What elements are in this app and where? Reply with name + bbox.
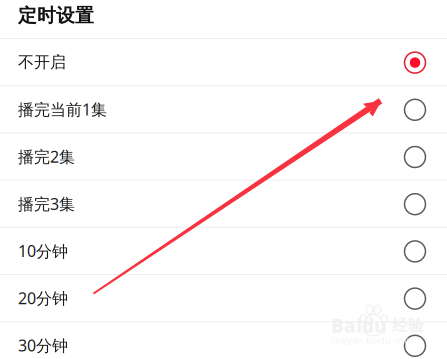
staticText: 播完2集 <box>18 146 75 167</box>
staticText: 不开启 <box>18 52 66 72</box>
button[interactable]: 播完2集 <box>0 133 447 181</box>
button[interactable]: 播完3集 <box>0 181 447 228</box>
staticText: 30分钟 <box>18 335 68 356</box>
staticText: 定时设置 <box>18 4 94 27</box>
button[interactable]: 不开启 <box>0 39 447 86</box>
staticText: 播完3集 <box>18 193 75 214</box>
button[interactable]: 10分钟 <box>0 228 447 275</box>
staticText: 经验 <box>392 316 424 335</box>
button[interactable]: 20分钟 <box>0 275 447 322</box>
staticText: Baidu <box>331 313 387 338</box>
button[interactable]: 播完当前1集 <box>0 86 447 133</box>
staticText: jingyan.baidu.com <box>331 334 413 346</box>
staticText: 20分钟 <box>18 287 68 309</box>
button[interactable]: 30分钟 <box>0 322 447 359</box>
staticText: 播完当前1集 <box>18 99 107 120</box>
staticText: 10分钟 <box>18 240 68 261</box>
